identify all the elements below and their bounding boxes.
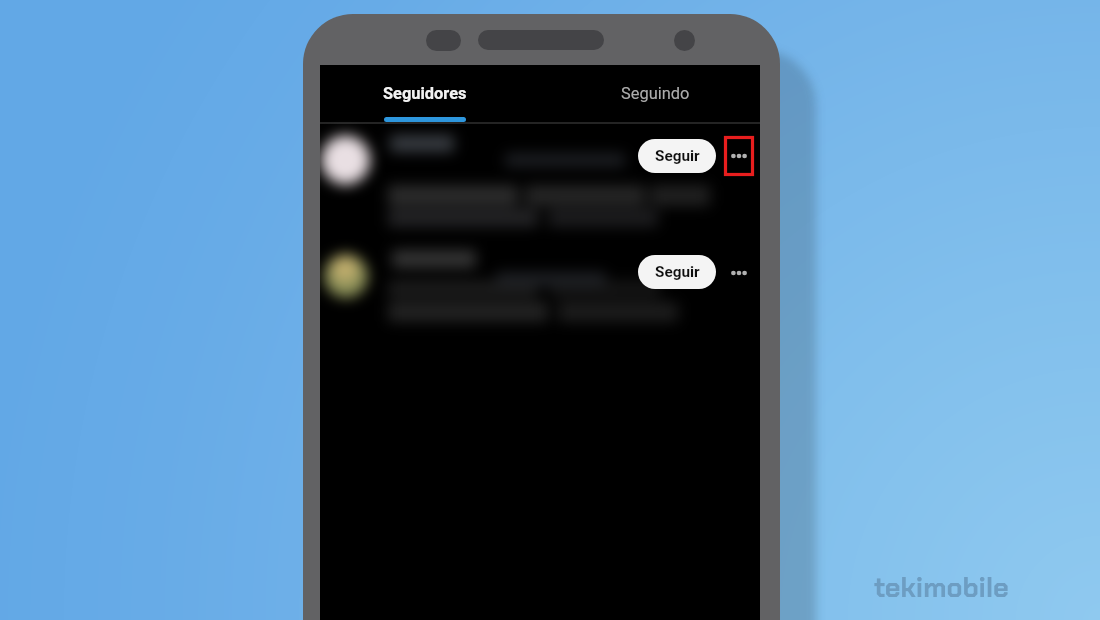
button[interactable]: Seguidores (320, 65, 530, 122)
staticText: tekimobile (874, 570, 1009, 605)
staticText: Seguir (655, 263, 700, 281)
button[interactable]: Seguir (638, 255, 716, 289)
button[interactable]: Mais opções (724, 136, 754, 176)
button[interactable]: Seguindo (570, 65, 740, 122)
staticText: Seguidores (383, 84, 467, 103)
staticText: Seguir (655, 147, 700, 165)
button[interactable]: Mais opções (724, 253, 754, 293)
button[interactable]: Seguir (638, 139, 716, 173)
staticText: Seguindo (621, 84, 690, 103)
button[interactable]: tekimobile (874, 570, 1009, 605)
